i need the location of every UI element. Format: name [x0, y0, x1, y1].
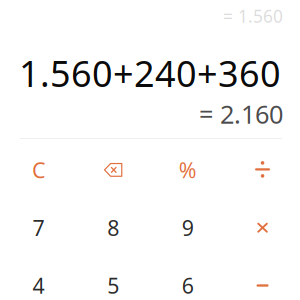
- button[interactable]: Delete: [76, 141, 150, 199]
- staticText: 1.560+240+360: [19, 49, 281, 97]
- button[interactable]: 6: [150, 257, 225, 300]
- staticText: 9: [182, 213, 194, 242]
- button[interactable]: 9: [150, 199, 225, 257]
- staticText: 6: [182, 271, 194, 300]
- staticText: 7: [32, 213, 44, 242]
- button[interactable]: 4: [1, 257, 76, 300]
- button[interactable]: 8: [76, 199, 150, 257]
- staticText: 5: [107, 271, 119, 300]
- button[interactable]: Multiply: [225, 199, 300, 257]
- button[interactable]: %: [150, 141, 225, 199]
- button[interactable]: Divide: [225, 141, 300, 199]
- button[interactable]: 7: [1, 199, 76, 257]
- button[interactable]: 5: [76, 257, 150, 300]
- button[interactable]: Minus: [225, 257, 300, 300]
- button[interactable]: C: [1, 141, 76, 199]
- staticText: C: [32, 156, 45, 184]
- staticText: %: [179, 156, 197, 184]
- staticText: = 1.560: [223, 4, 283, 27]
- staticText: = 2.160: [199, 97, 283, 131]
- staticText: 8: [107, 213, 119, 242]
- staticText: 4: [32, 271, 44, 300]
